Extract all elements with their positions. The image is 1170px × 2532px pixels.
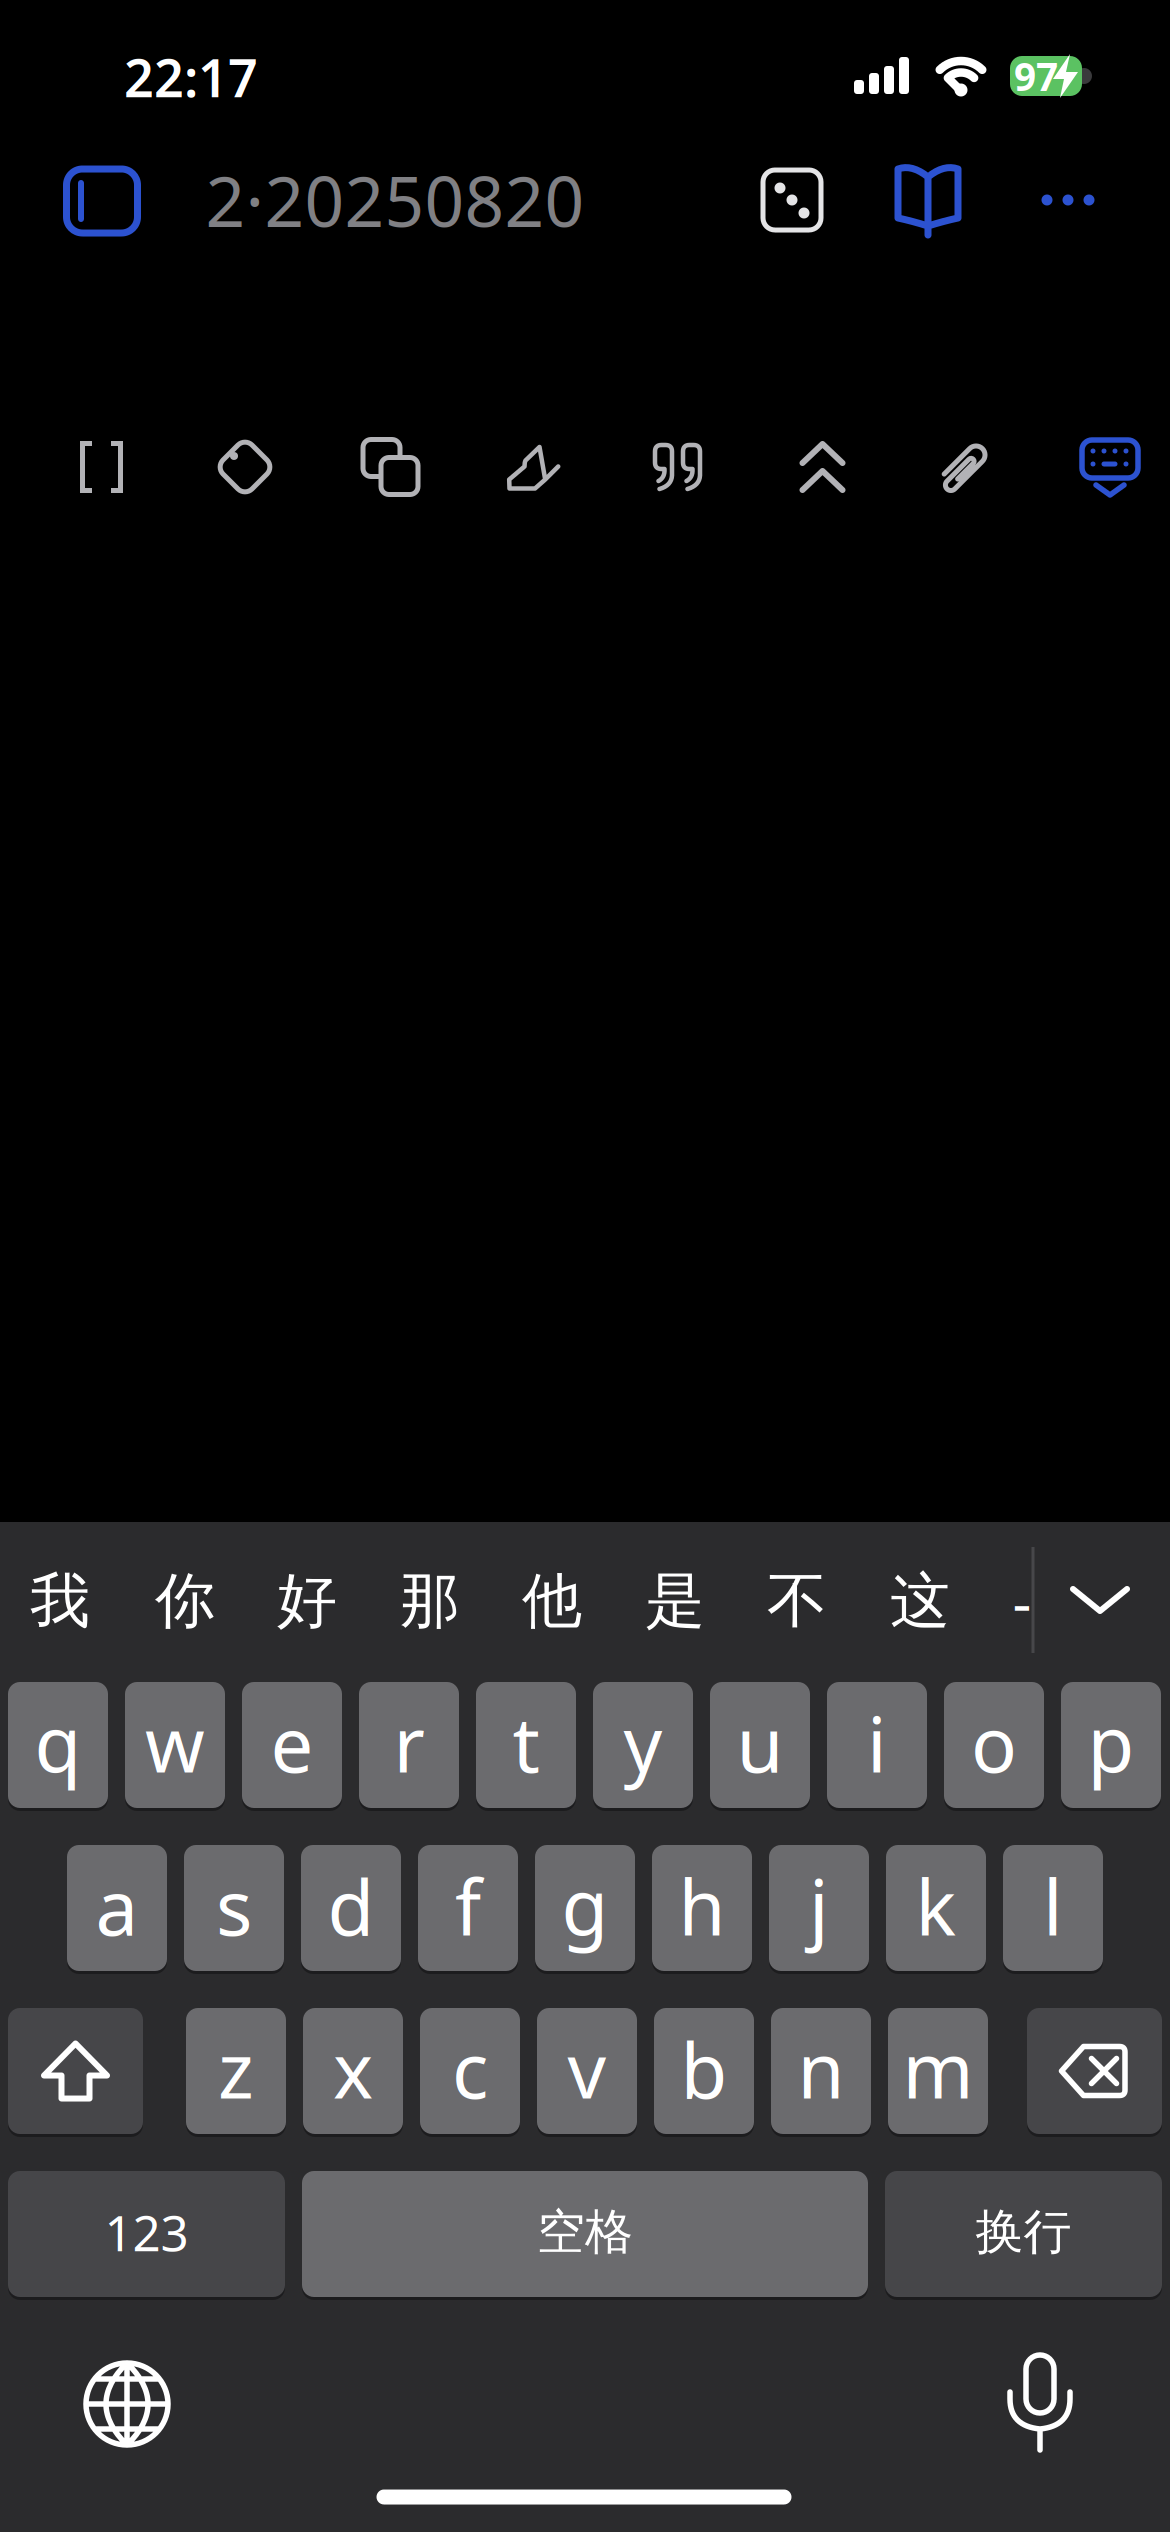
- button[interactable]: Dismiss keyboard: [1080, 435, 1140, 499]
- button[interactable]: Shift: [8, 2006, 143, 2136]
- button[interactable]: l: [1003, 1843, 1103, 1973]
- staticText: l: [1043, 1854, 1063, 1958]
- button[interactable]: d: [301, 1843, 401, 1973]
- staticText: c: [452, 2018, 488, 2119]
- staticText: s: [216, 1855, 252, 1956]
- button[interactable]: Draw: [504, 439, 560, 494]
- staticText: w: [145, 1692, 205, 1793]
- staticText: h: [678, 1855, 725, 1956]
- staticText: 不: [767, 1564, 827, 1638]
- staticText: 空格: [537, 2202, 633, 2261]
- staticText: 97: [1014, 50, 1058, 102]
- button[interactable]: 这: [875, 1551, 965, 1651]
- button[interactable]: 他: [507, 1551, 597, 1651]
- button[interactable]: r: [359, 1680, 459, 1810]
- button[interactable]: 空格: [302, 2169, 868, 2299]
- staticText: z: [218, 2018, 254, 2119]
- staticText: 123: [104, 2199, 188, 2265]
- button[interactable]: Hide candidates: [1056, 1551, 1146, 1651]
- button[interactable]: i: [827, 1680, 927, 1810]
- button[interactable]: Attach: [934, 437, 994, 497]
- button[interactable]: 不: [752, 1551, 842, 1651]
- button[interactable]: m: [888, 2006, 988, 2136]
- staticText: 2·20250820: [205, 154, 584, 246]
- staticText: y: [623, 1692, 662, 1793]
- staticText: p: [1087, 1692, 1134, 1793]
- staticText: q: [34, 1692, 81, 1793]
- button[interactable]: 那: [385, 1551, 475, 1651]
- staticText: 好: [277, 1564, 337, 1638]
- button[interactable]: z: [186, 2006, 286, 2136]
- button[interactable]: Dictate: [1006, 2352, 1074, 2452]
- staticText: e: [270, 1692, 313, 1793]
- staticText: k: [915, 1855, 956, 1956]
- button[interactable]: 我: [15, 1551, 105, 1651]
- button[interactable]: n: [771, 2006, 871, 2136]
- button[interactable]: Tag: [215, 437, 275, 497]
- button[interactable]: h: [652, 1843, 752, 1973]
- button[interactable]: y: [593, 1680, 693, 1810]
- button[interactable]: f: [418, 1843, 518, 1973]
- button[interactable]: Brackets: [80, 441, 123, 493]
- staticText: b: [680, 2018, 727, 2119]
- button[interactable]: t: [476, 1680, 576, 1810]
- staticText: m: [902, 2018, 973, 2119]
- staticText: 是: [645, 1564, 705, 1638]
- staticText: n: [797, 2018, 844, 2119]
- button[interactable]: 好: [262, 1551, 352, 1651]
- button[interactable]: Sidebar: [63, 166, 141, 236]
- button[interactable]: b: [654, 2006, 754, 2136]
- button[interactable]: c: [420, 2006, 520, 2136]
- button[interactable]: v: [537, 2006, 637, 2136]
- staticText: -: [1012, 1562, 1031, 1640]
- button[interactable]: 你: [140, 1551, 230, 1651]
- button[interactable]: More: [1033, 170, 1103, 230]
- button[interactable]: u: [710, 1680, 810, 1810]
- staticText: a: [95, 1855, 138, 1956]
- button[interactable]: s: [184, 1843, 284, 1973]
- button[interactable]: k: [886, 1843, 986, 1973]
- button[interactable]: w: [125, 1680, 225, 1810]
- staticText: i: [867, 1692, 887, 1793]
- staticText: 那: [400, 1564, 460, 1638]
- button[interactable]: e: [242, 1680, 342, 1810]
- button[interactable]: x: [303, 2006, 403, 2136]
- button[interactable]: 123: [8, 2169, 285, 2299]
- button[interactable]: Next keyboard: [83, 2360, 171, 2448]
- button[interactable]: o: [944, 1680, 1044, 1810]
- staticText: 你: [155, 1564, 215, 1638]
- staticText: o: [971, 1692, 1017, 1793]
- staticText: j: [809, 1855, 829, 1956]
- button[interactable]: Delete: [1027, 2006, 1162, 2136]
- button[interactable]: Quote: [647, 437, 707, 497]
- button[interactable]: Collapse: [799, 441, 845, 493]
- staticText: 这: [890, 1564, 950, 1638]
- staticText: g: [561, 1855, 608, 1956]
- staticText: 他: [522, 1564, 582, 1638]
- button[interactable]: Random note: [757, 165, 827, 235]
- button[interactable]: j: [769, 1843, 869, 1973]
- staticText: r: [393, 1692, 424, 1793]
- staticText: t: [512, 1692, 539, 1793]
- staticText: u: [736, 1692, 783, 1793]
- staticText: v: [567, 2018, 606, 2119]
- button[interactable]: p: [1061, 1680, 1161, 1810]
- button[interactable]: 是: [630, 1551, 720, 1651]
- button[interactable]: Copy: [360, 437, 420, 497]
- button[interactable]: g: [535, 1843, 635, 1973]
- button[interactable]: 换行: [885, 2169, 1162, 2299]
- staticText: x: [333, 2018, 373, 2119]
- button[interactable]: a: [67, 1843, 167, 1973]
- button[interactable]: Read: [893, 162, 963, 242]
- staticText: 我: [30, 1564, 90, 1638]
- staticText: f: [455, 1855, 481, 1956]
- staticText: 换行: [975, 2202, 1071, 2261]
- staticText: d: [327, 1855, 374, 1956]
- staticText: 22:17: [124, 42, 258, 112]
- button[interactable]: q: [8, 1680, 108, 1810]
